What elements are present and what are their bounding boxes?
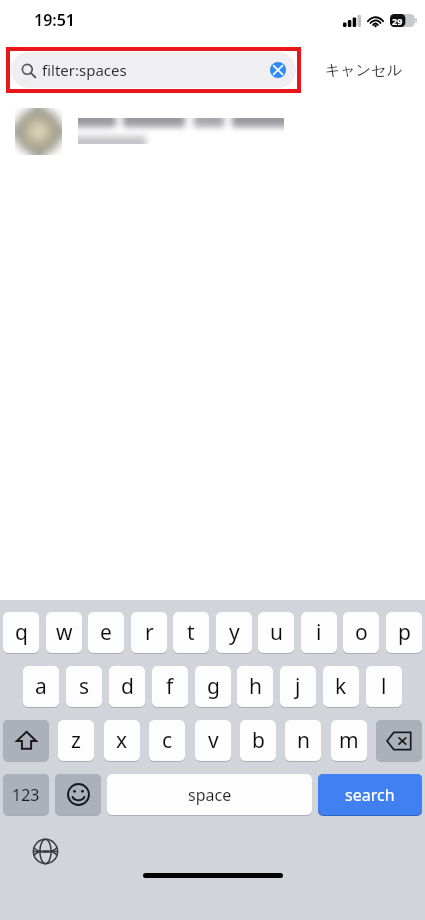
staticText: 123 <box>12 784 40 806</box>
button[interactable]: c <box>149 720 185 763</box>
button[interactable]: キャンセル <box>301 40 425 100</box>
staticText: r <box>145 618 154 647</box>
button[interactable]: filter:spaces <box>11 52 296 88</box>
button[interactable]: q <box>3 612 39 655</box>
staticText: j <box>295 672 301 701</box>
button[interactable] <box>0 100 425 162</box>
button[interactable]: search <box>318 774 422 817</box>
staticText: m <box>339 726 359 755</box>
staticText: 19:51 <box>34 9 76 31</box>
button[interactable]: Shift <box>3 720 49 763</box>
button[interactable]: space <box>107 774 312 817</box>
staticText: キャンセル <box>325 61 402 80</box>
staticText: k <box>335 672 347 701</box>
button[interactable]: g <box>195 666 231 709</box>
staticText: space <box>188 784 232 806</box>
button[interactable]: f <box>152 666 188 709</box>
staticText: y <box>229 618 240 647</box>
staticText: x <box>116 726 128 755</box>
staticText: 29 <box>392 15 403 27</box>
staticText: f <box>166 672 174 701</box>
button[interactable]: k <box>323 666 359 709</box>
button[interactable]: v <box>195 720 231 763</box>
button[interactable]: a <box>23 666 59 709</box>
button[interactable]: b <box>240 720 276 763</box>
button[interactable]: e <box>88 612 124 655</box>
button[interactable]: s <box>66 666 102 709</box>
button[interactable]: Change keyboard language <box>30 836 60 866</box>
button[interactable]: w <box>46 612 82 655</box>
button[interactable]: Clear text <box>270 62 286 78</box>
staticText: d <box>121 672 134 701</box>
staticText: p <box>398 618 411 647</box>
staticText: n <box>297 726 310 755</box>
button[interactable]: d <box>109 666 145 709</box>
button[interactable]: m <box>331 720 367 763</box>
button[interactable]: u <box>258 612 294 655</box>
button[interactable]: y <box>216 612 252 655</box>
button[interactable]: r <box>131 612 167 655</box>
button[interactable]: h <box>237 666 273 709</box>
button[interactable]: Backspace <box>376 720 422 763</box>
staticText: h <box>249 672 262 701</box>
staticText: a <box>35 672 47 701</box>
staticText: o <box>355 618 368 647</box>
button[interactable]: i <box>301 612 337 655</box>
button[interactable]: z <box>58 720 94 763</box>
staticText: l <box>381 672 387 701</box>
staticText: search <box>345 784 395 806</box>
button[interactable]: o <box>343 612 379 655</box>
staticText: z <box>71 726 81 755</box>
button[interactable]: j <box>280 666 316 709</box>
button[interactable]: Emoji <box>55 774 101 817</box>
staticText: filter:spaces <box>42 60 127 80</box>
staticText: c <box>162 726 173 755</box>
staticText: q <box>15 618 28 647</box>
staticText: t <box>187 618 195 647</box>
staticText: e <box>100 618 112 647</box>
staticText: v <box>208 726 219 755</box>
button[interactable]: n <box>285 720 321 763</box>
button[interactable]: l <box>366 666 402 709</box>
staticText: i <box>316 618 322 647</box>
staticText: s <box>79 672 90 701</box>
staticText: u <box>270 618 283 647</box>
button[interactable]: t <box>173 612 209 655</box>
staticText: g <box>207 672 220 701</box>
button[interactable]: x <box>104 720 140 763</box>
staticText: w <box>56 618 73 647</box>
button[interactable]: p <box>386 612 422 655</box>
button[interactable]: 123 <box>3 774 49 817</box>
staticText: b <box>252 726 265 755</box>
